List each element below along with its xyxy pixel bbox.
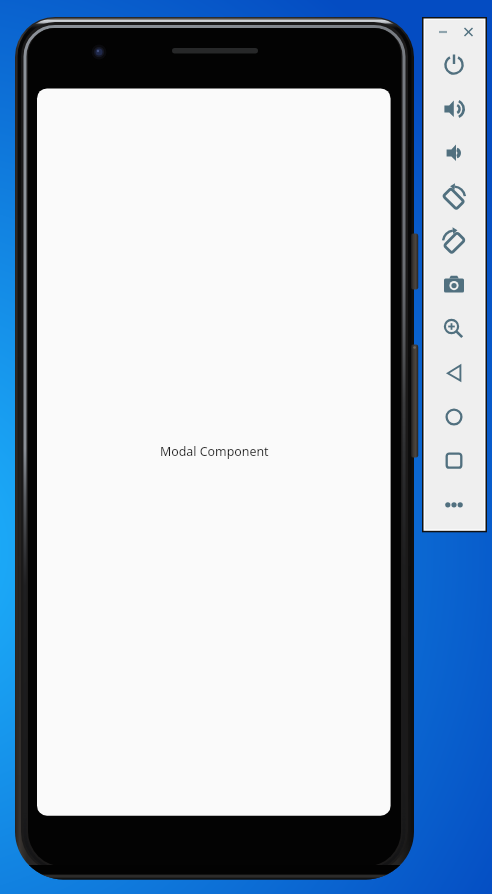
button[interactable]: Volume down	[422, 133, 487, 177]
button[interactable]: Take screenshot	[422, 265, 487, 309]
button[interactable]: Rotate left	[422, 177, 487, 221]
button[interactable]: Rotate right	[422, 221, 487, 265]
button[interactable]: Home	[422, 397, 487, 441]
button[interactable]: Back	[422, 353, 487, 397]
button[interactable]: Zoom	[422, 309, 487, 353]
button[interactable]: Volume up	[422, 89, 487, 133]
button[interactable]: Minimize	[422, 17, 454, 45]
button[interactable]: More	[422, 485, 487, 529]
button[interactable]: Overview	[422, 441, 487, 485]
button[interactable]: Close	[454, 17, 486, 45]
staticText: Modal Component	[160, 443, 269, 460]
button[interactable]: Power	[422, 64, 487, 108]
